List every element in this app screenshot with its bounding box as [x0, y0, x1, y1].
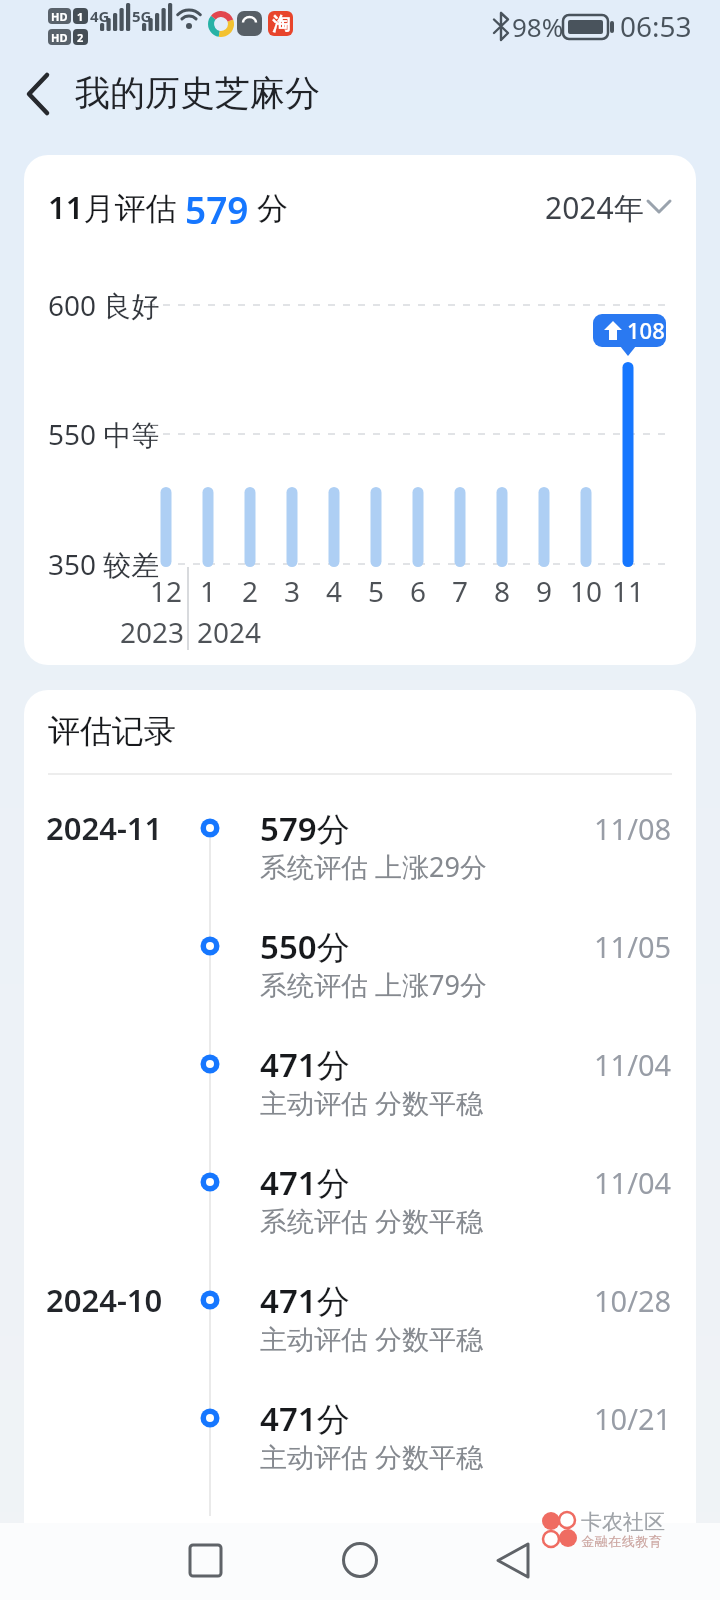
- staticText: 550分: [260, 924, 350, 969]
- staticText: 471分: [260, 1042, 350, 1087]
- staticText: 11/08: [594, 809, 672, 848]
- staticText: 2: [77, 30, 84, 45]
- staticText: 2024: [197, 613, 262, 651]
- button[interactable]: [24, 794, 696, 900]
- staticText: HD: [51, 9, 68, 24]
- staticText: 471分: [260, 1396, 350, 1441]
- staticText: 579分: [260, 806, 350, 851]
- staticText: 579: [185, 184, 249, 230]
- staticText: 11/05: [594, 927, 672, 966]
- staticText: 2: [242, 572, 259, 610]
- staticText: 11: [612, 572, 645, 610]
- staticText: 1: [77, 9, 84, 24]
- button[interactable]: [24, 1148, 696, 1254]
- button[interactable]: [24, 1384, 696, 1490]
- staticText: 主动评估 分数平稳: [260, 1084, 484, 1121]
- staticText: 8: [494, 572, 511, 610]
- staticText: 06:53: [620, 7, 692, 45]
- staticText: 2024年: [545, 187, 644, 228]
- staticText: 评估记录: [48, 711, 176, 751]
- staticText: 471分: [260, 1278, 350, 1323]
- staticText: 分: [249, 186, 289, 228]
- staticText: HD: [51, 30, 68, 45]
- staticText: 3: [284, 572, 301, 610]
- staticText: 11月评估: [48, 186, 185, 228]
- staticText: 卡农社区: [581, 1509, 665, 1535]
- staticText: 1: [200, 572, 217, 610]
- staticText: 主动评估 分数平稳: [260, 1320, 484, 1357]
- button[interactable]: [16, 66, 64, 122]
- staticText: 主动评估 分数平稳: [260, 1438, 484, 1475]
- staticText: 2024-11: [46, 807, 163, 849]
- button[interactable]: [463, 1525, 563, 1595]
- staticText: 471分: [260, 1160, 350, 1205]
- staticText: 10/28: [594, 1281, 672, 1320]
- staticText: 98%: [512, 9, 564, 44]
- button[interactable]: [24, 1030, 696, 1136]
- staticText: 6: [410, 572, 427, 610]
- staticText: 5: [368, 572, 385, 610]
- staticText: 12: [150, 572, 183, 610]
- staticText: 2024-10: [46, 1279, 163, 1321]
- button[interactable]: [24, 912, 696, 1018]
- staticText: 4: [326, 572, 343, 610]
- staticText: 11/04: [594, 1163, 672, 1202]
- staticText: 10: [570, 572, 603, 610]
- button[interactable]: [530, 180, 680, 232]
- staticText: 11/04: [594, 1045, 672, 1084]
- staticText: 7: [452, 572, 469, 610]
- staticText: 淘: [272, 13, 290, 36]
- staticText: 系统评估 上涨79分: [260, 966, 487, 1003]
- staticText: 金融在线教育: [581, 1533, 662, 1549]
- staticText: 我的历史芝麻分: [75, 71, 320, 115]
- staticText: 系统评估 分数平稳: [260, 1202, 484, 1239]
- staticText: 系统评估 上涨29分: [260, 848, 487, 885]
- staticText: 350 较差: [48, 545, 160, 583]
- button[interactable]: [310, 1525, 410, 1595]
- staticText: 2023: [120, 613, 185, 651]
- button[interactable]: [24, 1266, 696, 1372]
- staticText: 5G: [132, 6, 152, 26]
- staticText: 9: [536, 572, 553, 610]
- staticText: 4G: [90, 6, 110, 26]
- button[interactable]: [155, 1525, 255, 1595]
- staticText: 10/21: [594, 1399, 672, 1438]
- staticText: 550 中等: [48, 415, 160, 453]
- staticText: 600 良好: [48, 286, 160, 324]
- staticText: 108: [627, 315, 665, 345]
